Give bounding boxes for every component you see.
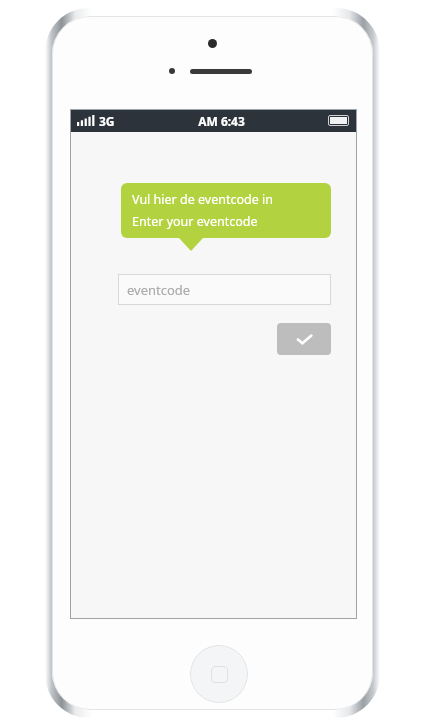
- button[interactable]: eventcode: [118, 274, 331, 305]
- staticText: Vul hier de eventcode in: [132, 191, 273, 208]
- button[interactable]: Home: [190, 645, 248, 703]
- button[interactable]: Submit: [277, 323, 331, 355]
- staticText: Enter your eventcode: [132, 213, 258, 230]
- staticText: 3G: [99, 113, 115, 129]
- staticText: eventcode: [127, 281, 191, 299]
- button[interactable]: Vul hier de eventcode in: [121, 183, 331, 238]
- staticText: AM 6:43: [198, 113, 245, 129]
